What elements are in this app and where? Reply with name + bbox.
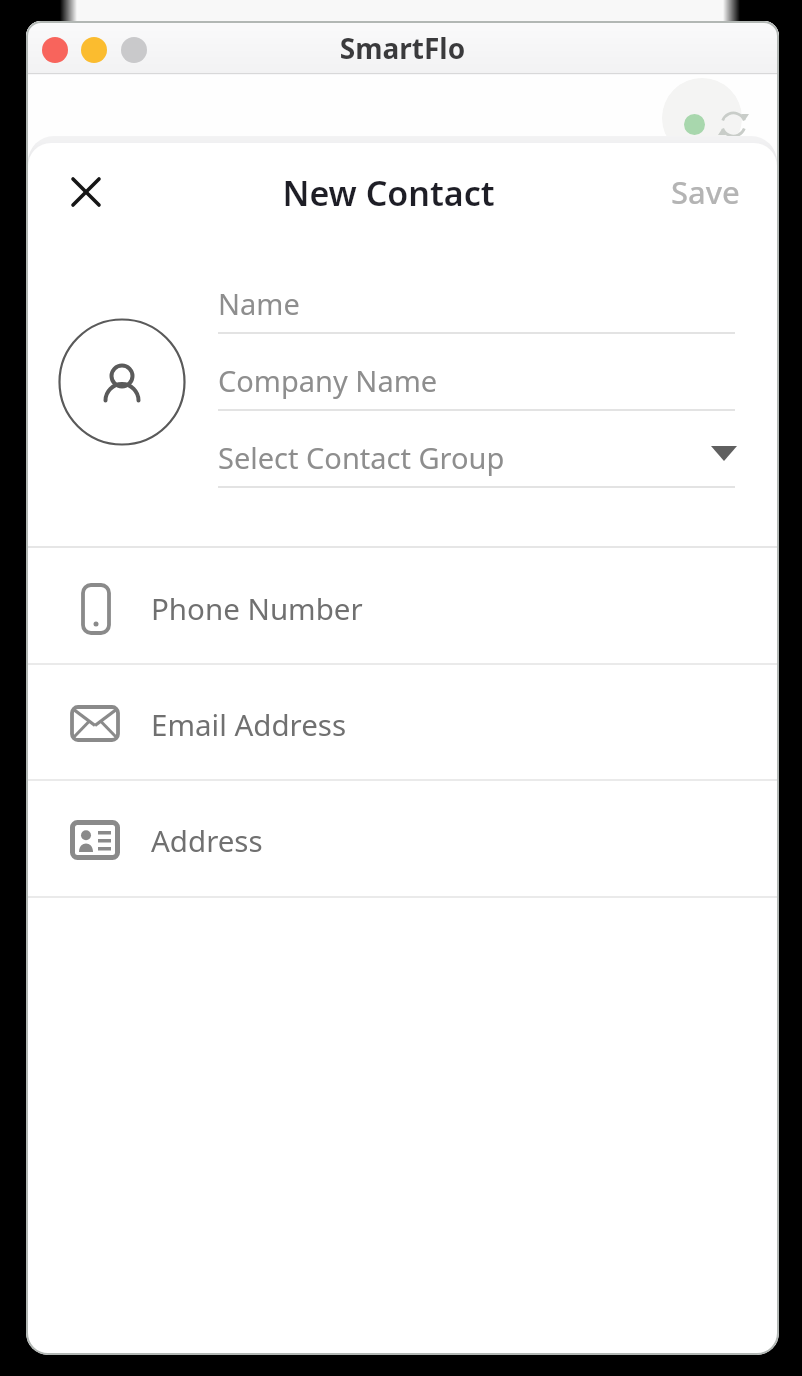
button[interactable]: Email Address [28,665,777,779]
button[interactable]: Phone Number [28,548,777,663]
button[interactable] [42,37,68,63]
staticText: Email Address [151,704,347,744]
button[interactable]: Save [671,171,740,213]
staticText: Select Contact Group [218,438,505,477]
staticText: New Contact [28,170,763,216]
button[interactable]: Select Contact Group [218,433,735,485]
button[interactable]: Address [28,781,777,895]
button[interactable] [81,37,107,63]
staticText: Save [671,171,740,213]
button[interactable] [121,37,147,63]
staticText: Address [151,820,263,860]
button[interactable] [58,318,186,446]
staticText: Name [218,284,300,323]
staticText: SmartFlo [26,29,779,67]
staticText: Company Name [218,361,438,400]
staticText: Phone Number [151,588,363,628]
button[interactable] [68,174,104,210]
